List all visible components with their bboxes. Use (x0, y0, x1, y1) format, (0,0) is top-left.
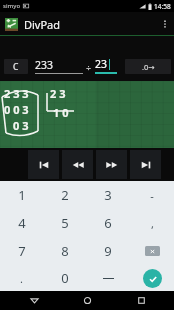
button[interactable]: 1 (0, 181, 43, 209)
staticText: 14:58 (154, 2, 171, 11)
staticText: 0 0 3 (4, 102, 29, 117)
staticText: 0 3 (13, 118, 29, 133)
button[interactable] (86, 265, 130, 291)
staticText: - (150, 188, 154, 203)
button[interactable]: . (0, 265, 43, 291)
button[interactable]: 7 (0, 237, 43, 265)
staticText: . (20, 271, 23, 286)
staticText: 23 (95, 57, 108, 71)
staticText: 6 (104, 214, 112, 232)
button[interactable]: 6 (86, 209, 130, 237)
staticText: 2 (61, 186, 69, 204)
button[interactable]: 4 (0, 209, 43, 237)
button[interactable]: 9 (86, 237, 130, 265)
staticText: ÷ (86, 61, 92, 73)
staticText: 9 (104, 242, 112, 260)
staticText: .0→ (142, 62, 155, 72)
staticText: 4 (18, 214, 26, 232)
button[interactable]: Rewind (62, 150, 93, 179)
staticText: simyo (3, 2, 21, 10)
button[interactable]: 5 (43, 209, 86, 237)
staticText: , (151, 216, 154, 231)
staticText: 2 3 3 (4, 86, 29, 101)
button[interactable]: C (4, 59, 28, 74)
button[interactable]: .0→ (125, 59, 171, 74)
staticText: 8 (61, 242, 69, 260)
button[interactable]: Fast forward (96, 150, 127, 179)
staticText: 233 (35, 58, 54, 72)
button[interactable]: 233 (35, 58, 83, 74)
button[interactable]: - (130, 181, 174, 209)
staticText: 1 0 (53, 105, 69, 120)
button[interactable]: Recents (121, 291, 161, 310)
staticText: 5 (61, 214, 69, 232)
button[interactable]: 0 (43, 265, 86, 291)
staticText: 7 (18, 242, 26, 260)
staticText: 2 3 (50, 86, 66, 101)
staticText: 1 (18, 186, 26, 204)
button[interactable]: , (130, 209, 174, 237)
button[interactable]: Confirm (130, 265, 174, 291)
button[interactable]: 23 (95, 57, 117, 74)
button[interactable]: Home (67, 291, 107, 310)
button[interactable]: Backspace (130, 237, 174, 265)
button[interactable]: More options (156, 12, 174, 36)
staticText: 3 (104, 186, 112, 204)
staticText: C (13, 61, 19, 73)
button[interactable]: 3 (86, 181, 130, 209)
button[interactable]: 2 (43, 181, 86, 209)
staticText: DivPad (24, 17, 61, 32)
button[interactable]: Skip to start (28, 150, 59, 179)
button[interactable]: Back (14, 291, 54, 310)
button[interactable]: Skip to end (130, 150, 161, 179)
button[interactable]: 8 (43, 237, 86, 265)
staticText: 0 (61, 269, 69, 287)
